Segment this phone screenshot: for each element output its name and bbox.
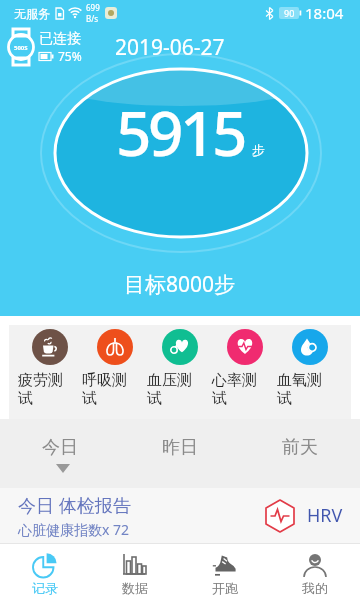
staticText: 心率测 试 bbox=[212, 371, 257, 408]
staticText: 记录 bbox=[32, 580, 58, 596]
staticText: 699 bbox=[86, 2, 100, 13]
button[interactable]: 开跑 bbox=[180, 543, 270, 600]
staticText: 我的 bbox=[302, 580, 328, 596]
staticText: 前天 bbox=[282, 436, 318, 459]
staticText: 数据 bbox=[122, 580, 148, 596]
staticText: B/s bbox=[86, 13, 99, 24]
staticText: 昨日 bbox=[162, 436, 198, 459]
staticText: 开跑 bbox=[212, 580, 238, 596]
staticText: 75% bbox=[58, 48, 82, 64]
staticText: 无服务 bbox=[14, 6, 50, 21]
staticText: 疲劳测 试 bbox=[18, 371, 63, 408]
button[interactable]: 疲劳测 试 bbox=[18, 325, 82, 419]
staticText: 今日 bbox=[42, 436, 78, 459]
button[interactable]: 血压测 试 bbox=[147, 325, 212, 419]
staticText: 血压测 试 bbox=[147, 371, 192, 408]
button[interactable]: 前天 bbox=[240, 436, 360, 459]
staticText: 步 bbox=[252, 142, 265, 158]
staticText: 18:04 bbox=[305, 3, 344, 23]
button[interactable]: 我的 bbox=[270, 543, 360, 600]
button[interactable]: 500S bbox=[5, 28, 37, 66]
button[interactable]: 今日 bbox=[0, 436, 120, 459]
staticText: 今日 体检报告 bbox=[18, 493, 131, 518]
button[interactable]: 呼吸测 试 bbox=[82, 325, 147, 419]
staticText: 2019-06-27 bbox=[115, 33, 225, 62]
button[interactable]: 数据 bbox=[90, 543, 180, 600]
staticText: 心脏健康指数x 72 bbox=[18, 520, 130, 539]
button[interactable]: 血氧测 试 bbox=[277, 325, 342, 419]
button[interactable]: 昨日 bbox=[120, 436, 240, 459]
staticText: 500S bbox=[14, 44, 28, 52]
button[interactable]: 今日 体检报告 bbox=[0, 488, 360, 543]
staticText: 已连接 bbox=[39, 30, 81, 48]
staticText: HRV bbox=[307, 503, 343, 528]
button[interactable]: 记录 bbox=[0, 543, 90, 600]
button[interactable]: 心率测 试 bbox=[212, 325, 277, 419]
staticText: 呼吸测 试 bbox=[82, 371, 127, 408]
staticText: 90 bbox=[284, 7, 295, 19]
staticText: 5915 bbox=[116, 90, 244, 174]
staticText: 目标8000步 bbox=[124, 270, 236, 299]
staticText: 血氧测 试 bbox=[277, 371, 322, 408]
